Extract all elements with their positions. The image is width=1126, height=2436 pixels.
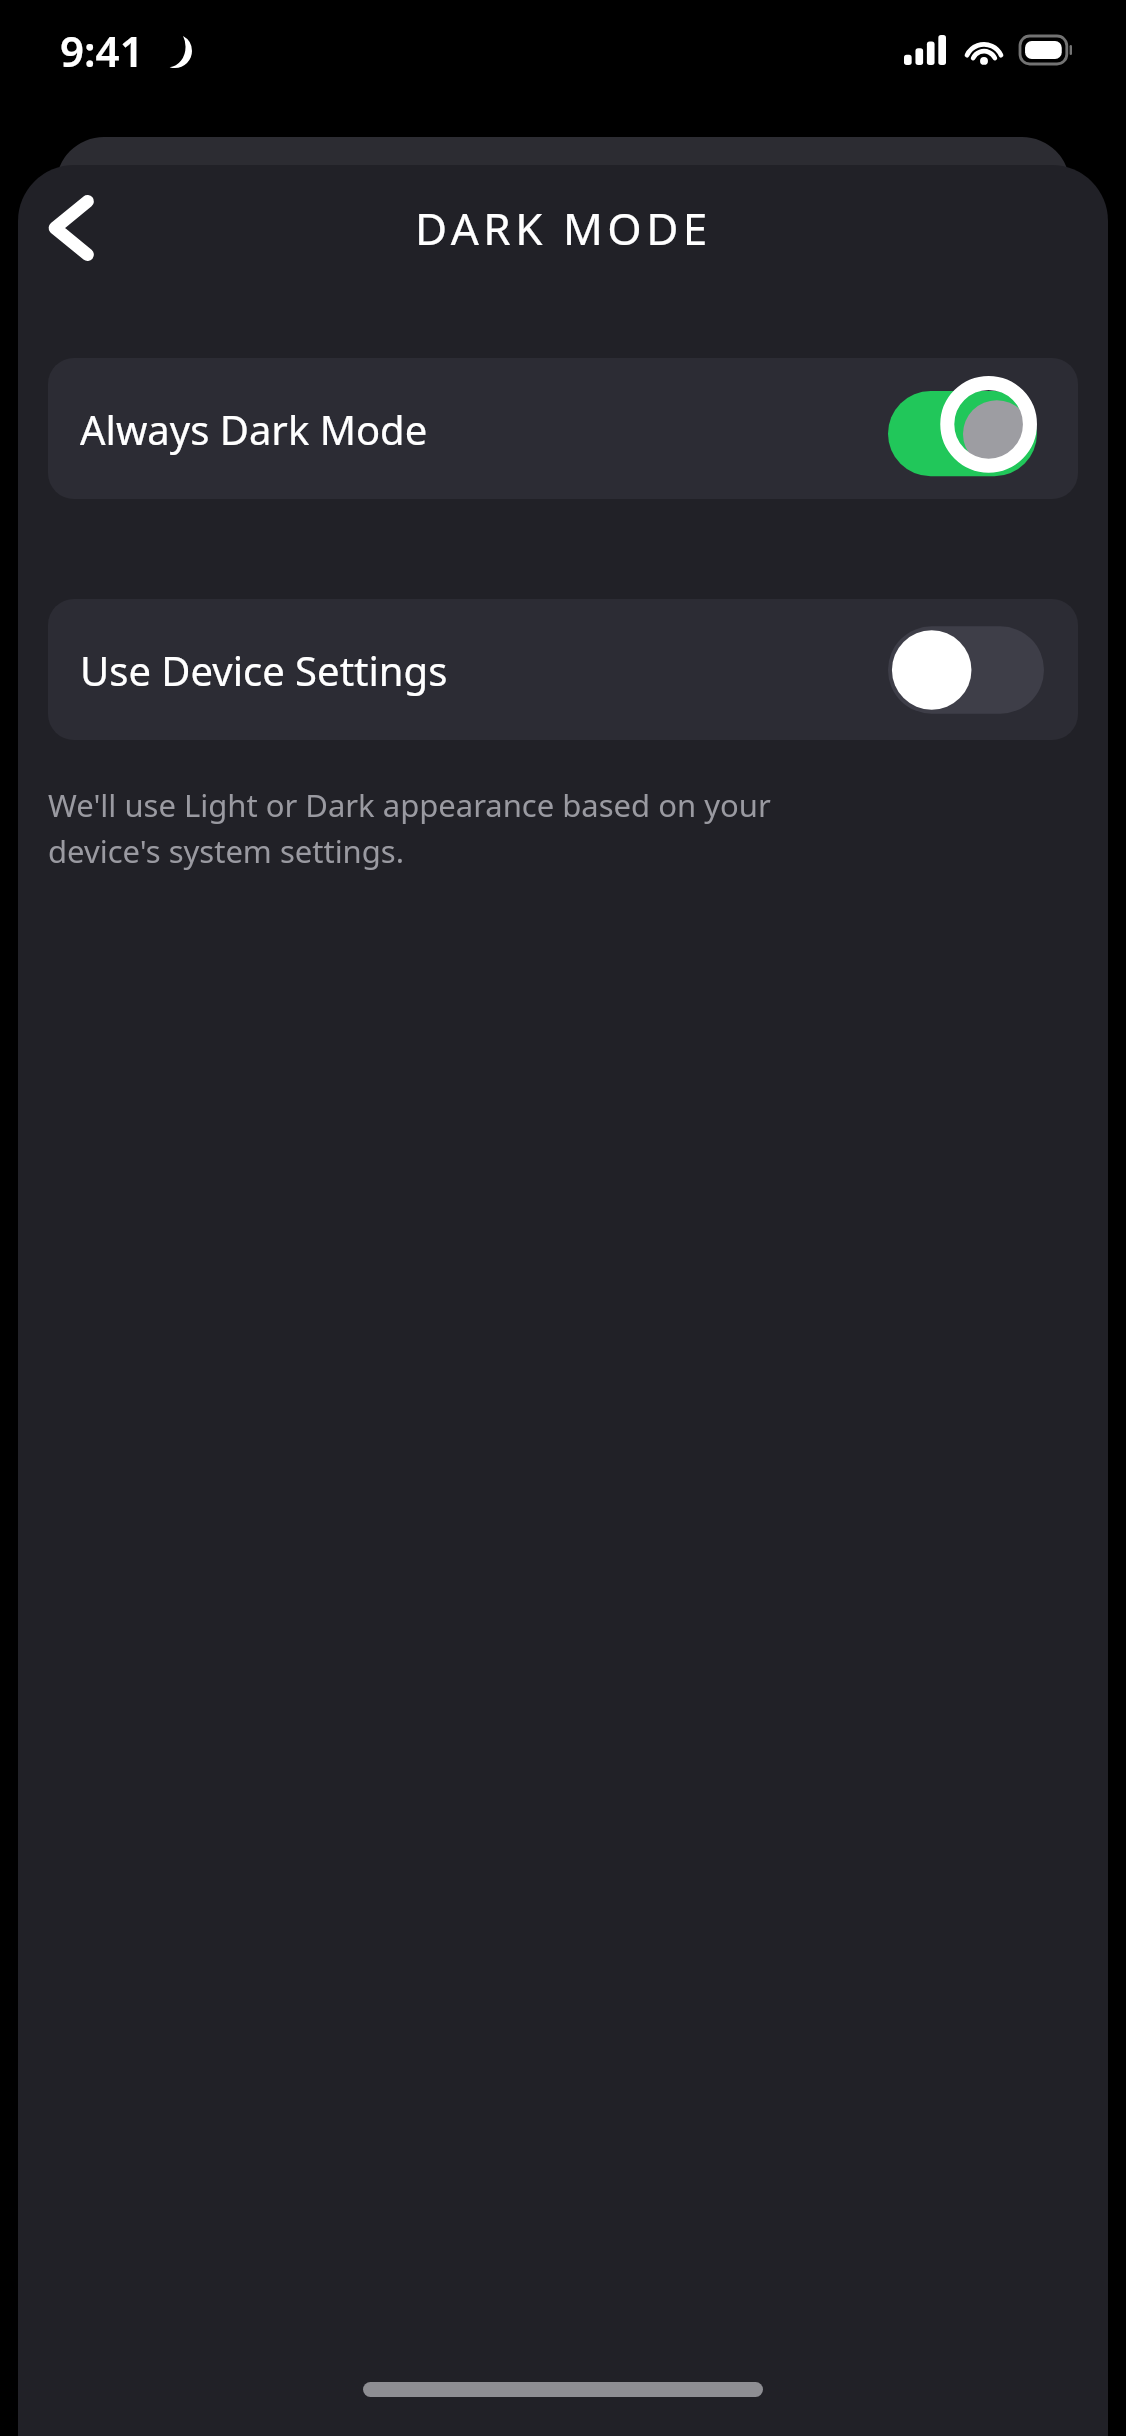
button[interactable]: Use Device Settings (48, 599, 1078, 740)
staticText: Use Device Settings (80, 643, 888, 697)
button[interactable]: Use Device Settings toggle, off (888, 624, 1044, 716)
staticText: We'll use Light or Dark appearance based… (48, 784, 771, 872)
staticText: DARK MODE (415, 198, 712, 258)
staticText: Always Dark Mode (80, 402, 888, 456)
button[interactable]: Always Dark Mode toggle, on (888, 377, 1044, 481)
button[interactable]: Back (28, 186, 112, 270)
staticText: 9:41 (60, 22, 144, 79)
button[interactable]: Always Dark Mode (48, 358, 1078, 499)
